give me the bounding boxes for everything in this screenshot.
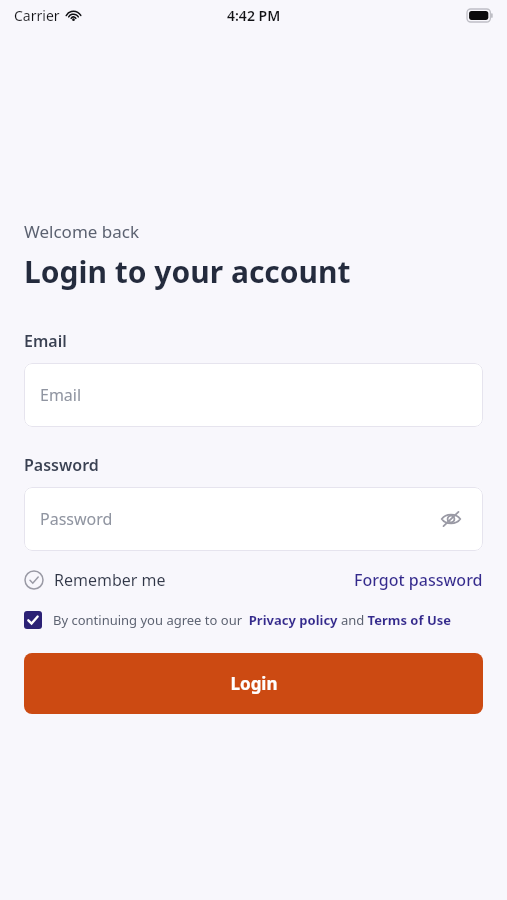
staticText: Forgot password xyxy=(354,569,483,591)
button[interactable]: Show password xyxy=(435,503,467,535)
button[interactable]: Remember me xyxy=(24,569,166,591)
button[interactable]: By continuing you agree to our Privacy p… xyxy=(53,611,451,629)
staticText: Login to your account xyxy=(24,251,351,292)
button[interactable]: Forgot password xyxy=(354,569,483,591)
staticText: Remember me xyxy=(54,569,166,591)
staticText: Email xyxy=(40,384,82,406)
staticText: 4:42 PM xyxy=(227,6,281,25)
button[interactable]: Password xyxy=(24,487,483,551)
staticText: Password xyxy=(40,508,113,530)
staticText: Email xyxy=(24,330,67,352)
staticText: Welcome back xyxy=(24,220,140,243)
staticText: Carrier xyxy=(14,6,60,25)
button[interactable]: Login xyxy=(24,653,483,714)
button[interactable]: Agree to terms xyxy=(24,611,42,629)
button[interactable]: Email xyxy=(24,363,483,427)
staticText: Login xyxy=(230,672,278,695)
staticText: Password xyxy=(24,454,99,476)
